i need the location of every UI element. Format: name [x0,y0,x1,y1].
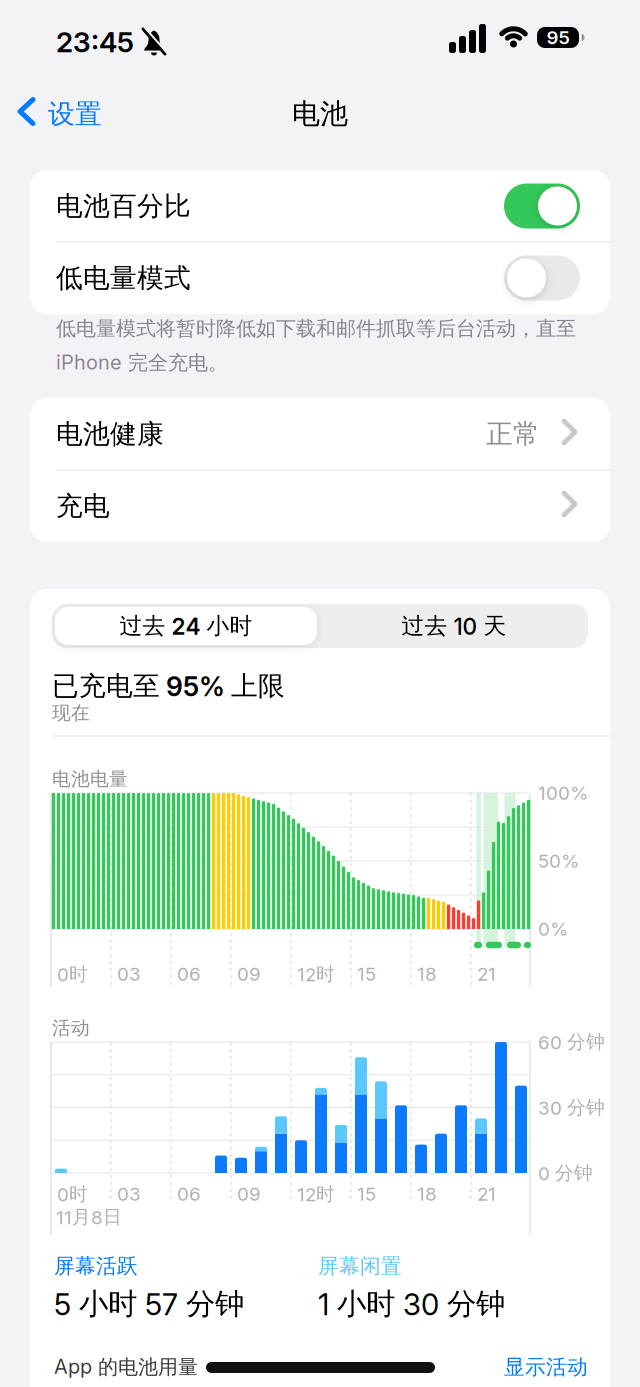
staticText: 低电量模式将暂时降低如下载和邮件抓取等后台活动，直至 iPhone 完全充电。 [56,316,576,375]
staticText: 95 [546,26,569,49]
staticText: 过去 24 小时 [119,612,252,640]
staticText: 23:45 [56,25,134,59]
staticText: 21 [477,1183,496,1205]
staticText: 电池健康 [56,417,164,451]
staticText: 0% [538,918,568,940]
staticText: 03 [117,963,141,985]
staticText: 活动 [52,1016,90,1040]
staticText: 50% [538,850,579,872]
staticText: 15 [357,1183,376,1205]
staticText: 0时 [57,1182,88,1206]
staticText: 06 [177,1183,201,1205]
staticText: 60 分钟 [538,1030,605,1054]
button[interactable]: 返回设置 [20,97,102,131]
button[interactable]: 低电量模式 [30,242,610,314]
staticText: 15 [357,963,376,985]
staticText: 电池电量 [52,767,128,791]
staticText: 0 分钟 [538,1161,593,1185]
staticText: 18 [417,1183,437,1205]
staticText: 显示活动 [504,1354,588,1380]
staticText: 100% [538,782,588,804]
staticText: 过去 10 天 [401,612,506,640]
staticText: 30 分钟 [538,1096,605,1119]
staticText: 06 [177,963,201,985]
staticText: 设置 [48,97,102,131]
staticText: 12时 [297,962,335,986]
staticText: 1 小时 30 分钟 [318,1285,505,1322]
button[interactable]: 充电 [30,470,610,542]
staticText: 12时 [297,1182,335,1206]
staticText: 低电量模式 [56,261,191,295]
staticText: 充电 [56,489,110,523]
staticText: 18 [417,963,437,985]
staticText: 09 [237,1183,261,1205]
staticText: 21 [477,963,496,985]
staticText: 电池 [292,96,348,132]
staticText: 屏幕闲置 [318,1253,402,1279]
staticText: App 的电池用量 [54,1354,198,1380]
button[interactable]: 过去 24 小时 [55,607,317,645]
button[interactable]: 显示活动 [468,1353,588,1381]
staticText: 03 [117,1183,141,1205]
staticText: 现在 [52,701,90,725]
staticText: 已充电至 95% 上限 [52,669,285,703]
staticText: 09 [237,963,261,985]
staticText: 5 小时 57 分钟 [54,1285,244,1322]
staticText: 正常 [486,417,540,451]
button[interactable]: 电池百分比 [30,170,610,242]
staticText: 屏幕活跃 [54,1253,138,1279]
button[interactable]: 过去 10 天 [323,607,585,645]
button[interactable]: 电池健康 [30,398,610,470]
staticText: 电池百分比 [56,189,191,223]
staticText: 11月8日 [56,1205,122,1229]
staticText: 0时 [57,962,88,986]
